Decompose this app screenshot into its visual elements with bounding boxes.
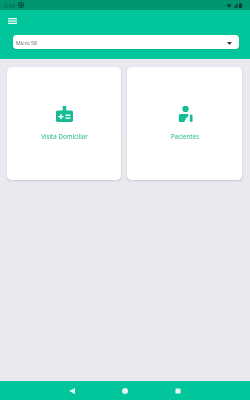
button[interactable]: Recent apps (162, 381, 194, 400)
button[interactable]: Home (109, 381, 141, 400)
staticText: Visita Domiciliar (41, 132, 88, 140)
button[interactable]: Visita Domiciliar (7, 67, 121, 180)
staticText: 3:16 (4, 2, 15, 9)
button[interactable]: Micro 58 (13, 35, 239, 49)
staticText: Pacientes (171, 132, 199, 140)
button[interactable]: Menu (2, 10, 23, 31)
staticText: Micro 58 (16, 39, 37, 46)
button[interactable]: Back (56, 381, 88, 400)
button[interactable]: Pacientes (127, 67, 242, 180)
